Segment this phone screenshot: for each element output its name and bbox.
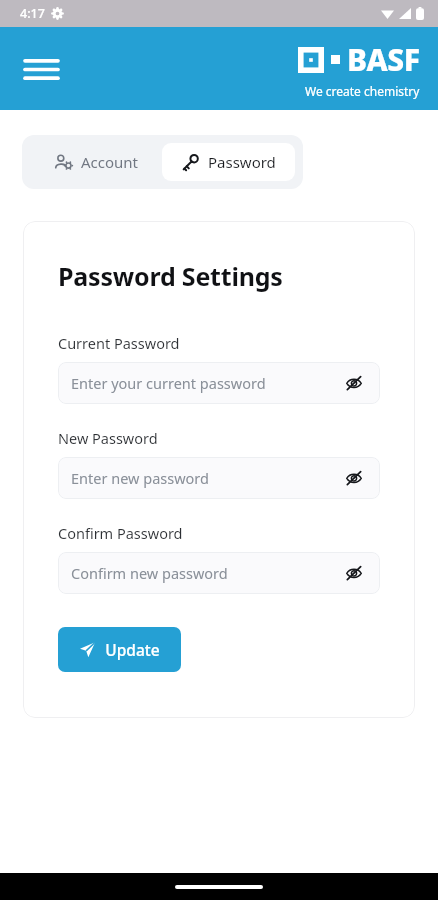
button[interactable]: Show password xyxy=(341,560,367,586)
button[interactable]: Show password xyxy=(341,370,367,396)
button[interactable]: Password xyxy=(162,143,295,181)
staticText: We create chemistry xyxy=(305,83,420,99)
staticText: Confirm new password xyxy=(71,563,341,583)
staticText: Update xyxy=(105,639,160,660)
button[interactable]: Open navigation menu xyxy=(18,46,64,92)
button[interactable]: Show password xyxy=(341,465,367,491)
button[interactable]: Update xyxy=(58,627,181,672)
button[interactable]: Confirm new password xyxy=(58,552,380,594)
staticText: Password xyxy=(208,152,276,172)
staticText: New Password xyxy=(58,428,158,448)
staticText: Confirm Password xyxy=(58,523,183,543)
staticText: Current Password xyxy=(58,333,180,353)
button[interactable]: Enter your current password xyxy=(58,362,380,404)
staticText: Enter new password xyxy=(71,468,341,488)
button[interactable]: Enter new password xyxy=(58,457,380,499)
staticText: Enter your current password xyxy=(71,373,341,393)
staticText: Account xyxy=(81,152,139,172)
staticText: 4:17 xyxy=(20,5,45,22)
staticText: BASF xyxy=(347,39,420,80)
staticText: Password Settings xyxy=(58,259,283,293)
button[interactable]: Account xyxy=(30,143,162,181)
